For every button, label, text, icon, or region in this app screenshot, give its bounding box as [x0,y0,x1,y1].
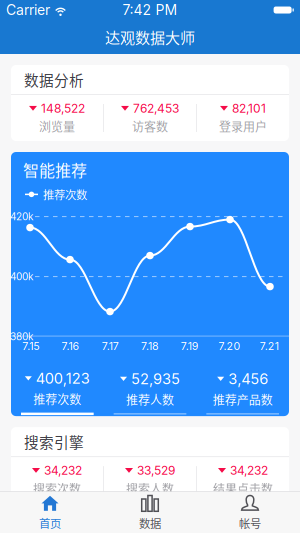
staticText: 访客数 [132,118,168,135]
staticText: 52,935 [131,370,180,388]
button[interactable]: 3,456 [196,370,289,415]
staticText: 7.18 [141,340,159,352]
staticText: 34,232 [44,463,82,478]
staticText: 762,453 [133,101,179,116]
staticText: 推荐次数 [33,390,81,408]
staticText: 浏览量 [39,118,75,135]
staticText: 搜索次数 [33,480,81,497]
staticText: 400k [10,271,33,283]
staticText: 33,529 [137,463,175,478]
staticText: 推荐人数 [126,391,174,408]
staticText: 7:42 PM [122,1,177,18]
staticText: 达观数据大师 [105,26,195,48]
staticText: 34,232 [230,463,268,478]
staticText: 7.16 [62,340,80,352]
staticText: 数据 [139,515,161,531]
staticText: 推荐次数 [43,186,87,203]
staticText: 首页 [39,515,61,531]
staticText: 登录用户 [219,118,267,135]
staticText: 7.17 [102,340,119,352]
staticText: 400,123 [36,369,90,387]
button[interactable]: 帐号 [200,488,300,533]
button[interactable]: 首页 [0,488,100,533]
staticText: 搜索引擎 [24,431,84,452]
button[interactable]: 数据 [100,488,200,533]
staticText: 帐号 [239,515,261,531]
button[interactable]: 52,935 [104,370,196,415]
staticText: Carrier [6,1,50,18]
staticText: 3,456 [228,370,268,388]
staticText: 智能推荐 [23,158,87,181]
staticText: 7.21 [260,340,279,352]
staticText: 7.15 [22,340,39,352]
button[interactable]: 400,123 [11,369,104,415]
staticText: 82,101 [232,101,266,116]
staticText: 搜索人数 [126,480,174,497]
staticText: 结果点击数 [213,480,273,497]
staticText: 380k [10,331,33,343]
staticText: 数据分析 [24,69,84,90]
staticText: 420k [10,211,33,223]
staticText: 7.19 [181,340,199,352]
staticText: 推荐产品数 [213,391,273,408]
staticText: 148,522 [41,101,85,116]
staticText: 7.20 [218,340,240,352]
